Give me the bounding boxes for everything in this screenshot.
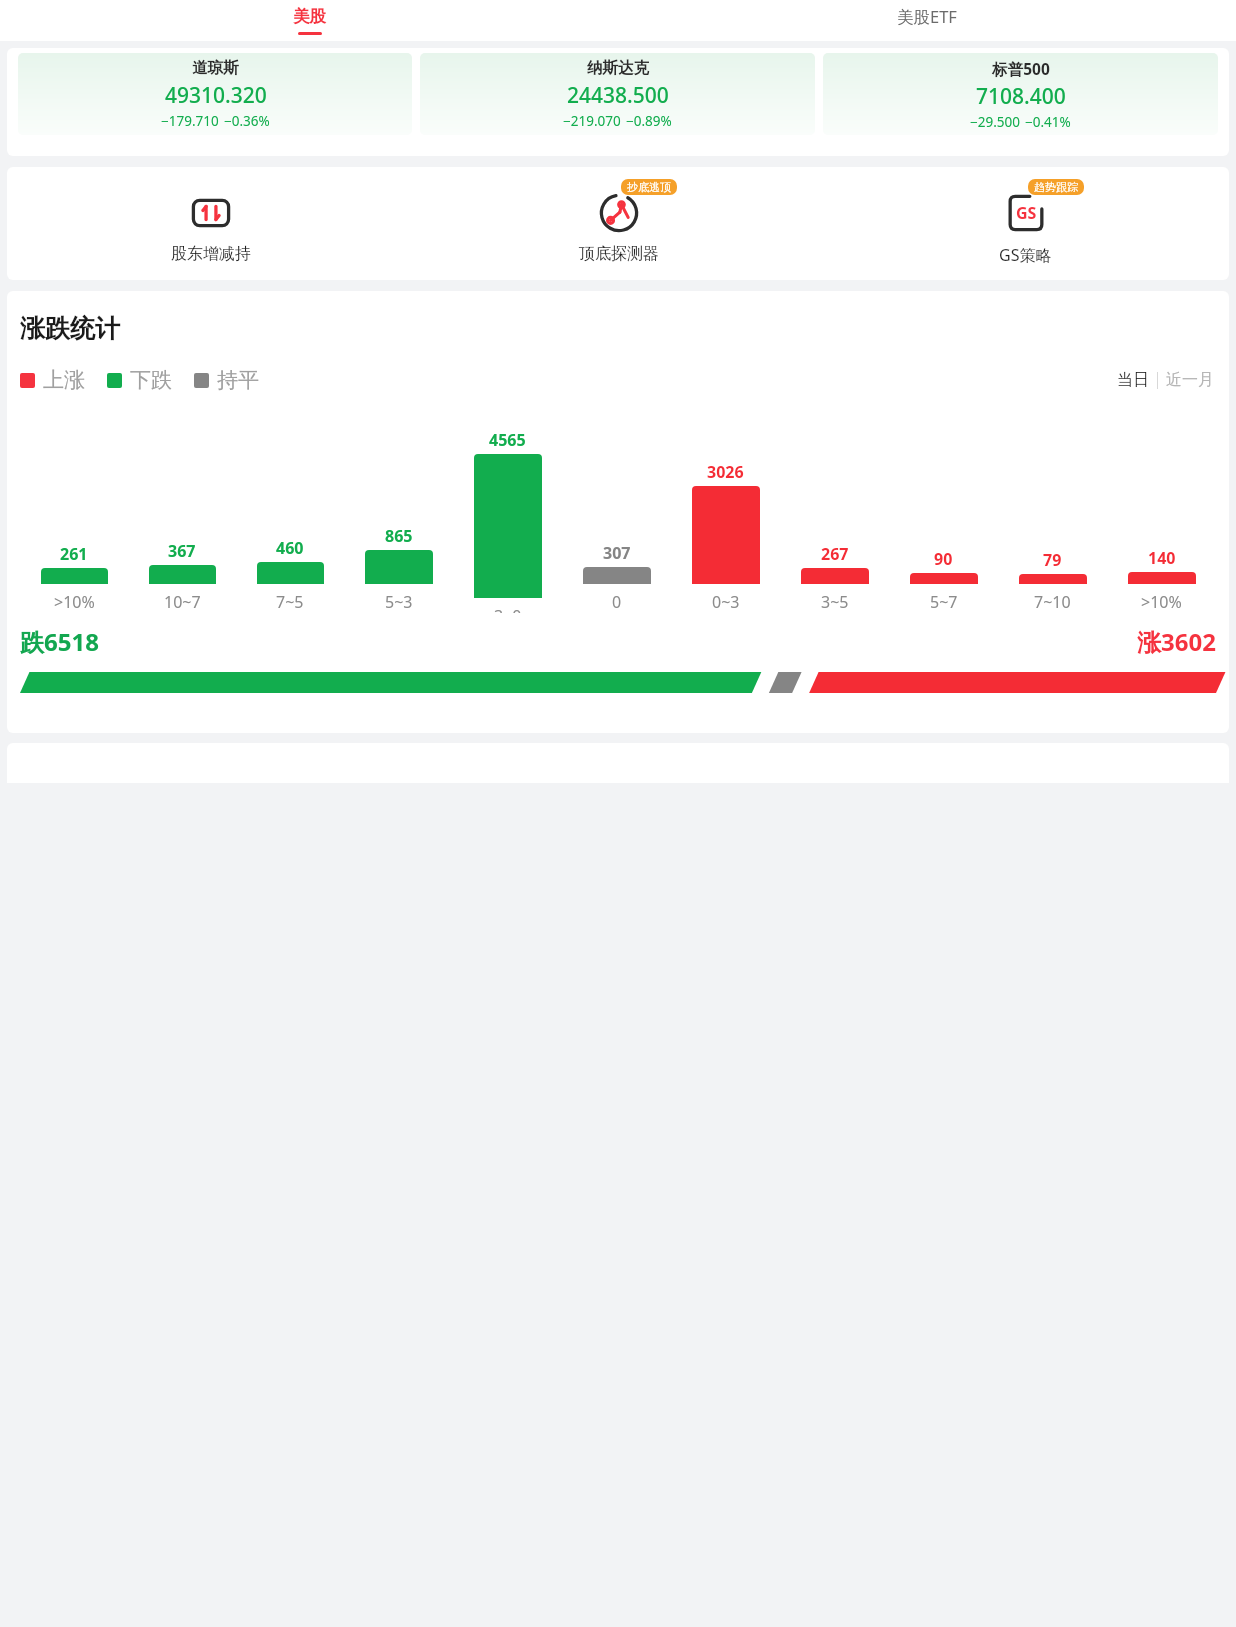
staticText: 267 bbox=[821, 543, 849, 565]
staticText: −0.89% bbox=[626, 112, 672, 130]
staticText: 307 bbox=[603, 542, 631, 564]
button[interactable]: 当日 bbox=[1115, 370, 1151, 390]
staticText: 股东增减持 bbox=[171, 244, 251, 264]
staticText: 道琼斯 bbox=[192, 58, 239, 78]
staticText: −0.41% bbox=[1025, 113, 1071, 131]
staticText: 下跌 bbox=[130, 367, 172, 393]
staticText: 5~3 bbox=[385, 591, 413, 613]
staticText: 865 bbox=[385, 525, 413, 547]
staticText: 3~0 bbox=[494, 605, 522, 613]
staticText: 当日 bbox=[1117, 370, 1149, 390]
staticText: 140 bbox=[1148, 547, 1176, 569]
staticText: 纳斯达克 bbox=[587, 58, 649, 78]
button[interactable]: 美股 bbox=[0, 0, 618, 41]
button[interactable]: 纳斯达克 bbox=[420, 53, 815, 135]
button[interactable]: 股东增减持 bbox=[7, 181, 415, 264]
staticText: 涨3602 bbox=[1137, 625, 1216, 658]
staticText: 7108.400 bbox=[976, 82, 1066, 111]
staticText: 标普500 bbox=[992, 58, 1050, 79]
staticText: 90 bbox=[934, 548, 953, 570]
staticText: >10% bbox=[1141, 591, 1182, 613]
staticText: 美股ETF bbox=[897, 5, 957, 28]
staticText: 上涨 bbox=[43, 367, 85, 393]
button[interactable]: 上涨 bbox=[20, 367, 85, 393]
staticText: 持平 bbox=[217, 367, 259, 393]
button[interactable]: 标普500 bbox=[823, 53, 1218, 135]
staticText: 367 bbox=[168, 540, 196, 562]
button[interactable]: 下跌 bbox=[107, 367, 172, 393]
staticText: 79 bbox=[1043, 549, 1062, 571]
staticText: 4565 bbox=[489, 429, 526, 451]
staticText: 0~3 bbox=[712, 591, 740, 613]
staticText: 10~7 bbox=[164, 591, 201, 613]
staticText: 近一月 bbox=[1166, 370, 1214, 390]
staticText: 0 bbox=[612, 591, 622, 613]
staticText: 5~7 bbox=[930, 591, 958, 613]
button[interactable]: 近一月 bbox=[1164, 370, 1216, 390]
staticText: 趋势跟踪 bbox=[1034, 180, 1078, 194]
staticText: 460 bbox=[276, 537, 304, 559]
button[interactable]: 抄底逃顶 bbox=[415, 181, 822, 264]
staticText: 3026 bbox=[707, 461, 744, 483]
staticText: 261 bbox=[60, 543, 88, 565]
staticText: −179.710 bbox=[161, 112, 219, 130]
staticText: 跌6518 bbox=[20, 625, 99, 658]
staticText: 49310.320 bbox=[165, 81, 267, 110]
staticText: 抄底逃顶 bbox=[627, 180, 671, 194]
staticText: 3~5 bbox=[821, 591, 849, 613]
button[interactable]: 道琼斯 bbox=[18, 53, 412, 135]
staticText: 顶底探测器 bbox=[579, 244, 659, 264]
staticText: 7~10 bbox=[1034, 591, 1071, 613]
button[interactable]: GS bbox=[822, 181, 1229, 266]
staticText: −29.500 bbox=[970, 113, 1020, 131]
button[interactable]: 持平 bbox=[194, 367, 259, 393]
staticText: >10% bbox=[54, 591, 95, 613]
staticText: 7~5 bbox=[276, 591, 304, 613]
staticText: GS bbox=[1016, 202, 1037, 224]
staticText: 涨跌统计 bbox=[20, 313, 120, 344]
staticText: −0.36% bbox=[224, 112, 270, 130]
button[interactable]: 美股ETF bbox=[618, 0, 1236, 41]
staticText: 24438.500 bbox=[567, 81, 669, 110]
staticText: GS策略 bbox=[999, 244, 1052, 266]
staticText: −219.070 bbox=[563, 112, 621, 130]
staticText: 美股 bbox=[293, 6, 326, 27]
